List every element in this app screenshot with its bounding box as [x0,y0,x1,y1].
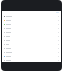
button[interactable] [2,30,61,34]
button[interactable] [2,34,61,38]
button[interactable] [2,54,61,58]
button[interactable] [2,26,61,30]
button[interactable] [2,38,61,42]
button[interactable] [2,14,61,18]
button[interactable] [2,42,61,46]
button[interactable] [2,50,61,54]
button[interactable] [2,22,61,26]
button[interactable] [2,46,61,50]
button[interactable] [2,58,61,62]
button[interactable] [2,18,61,22]
